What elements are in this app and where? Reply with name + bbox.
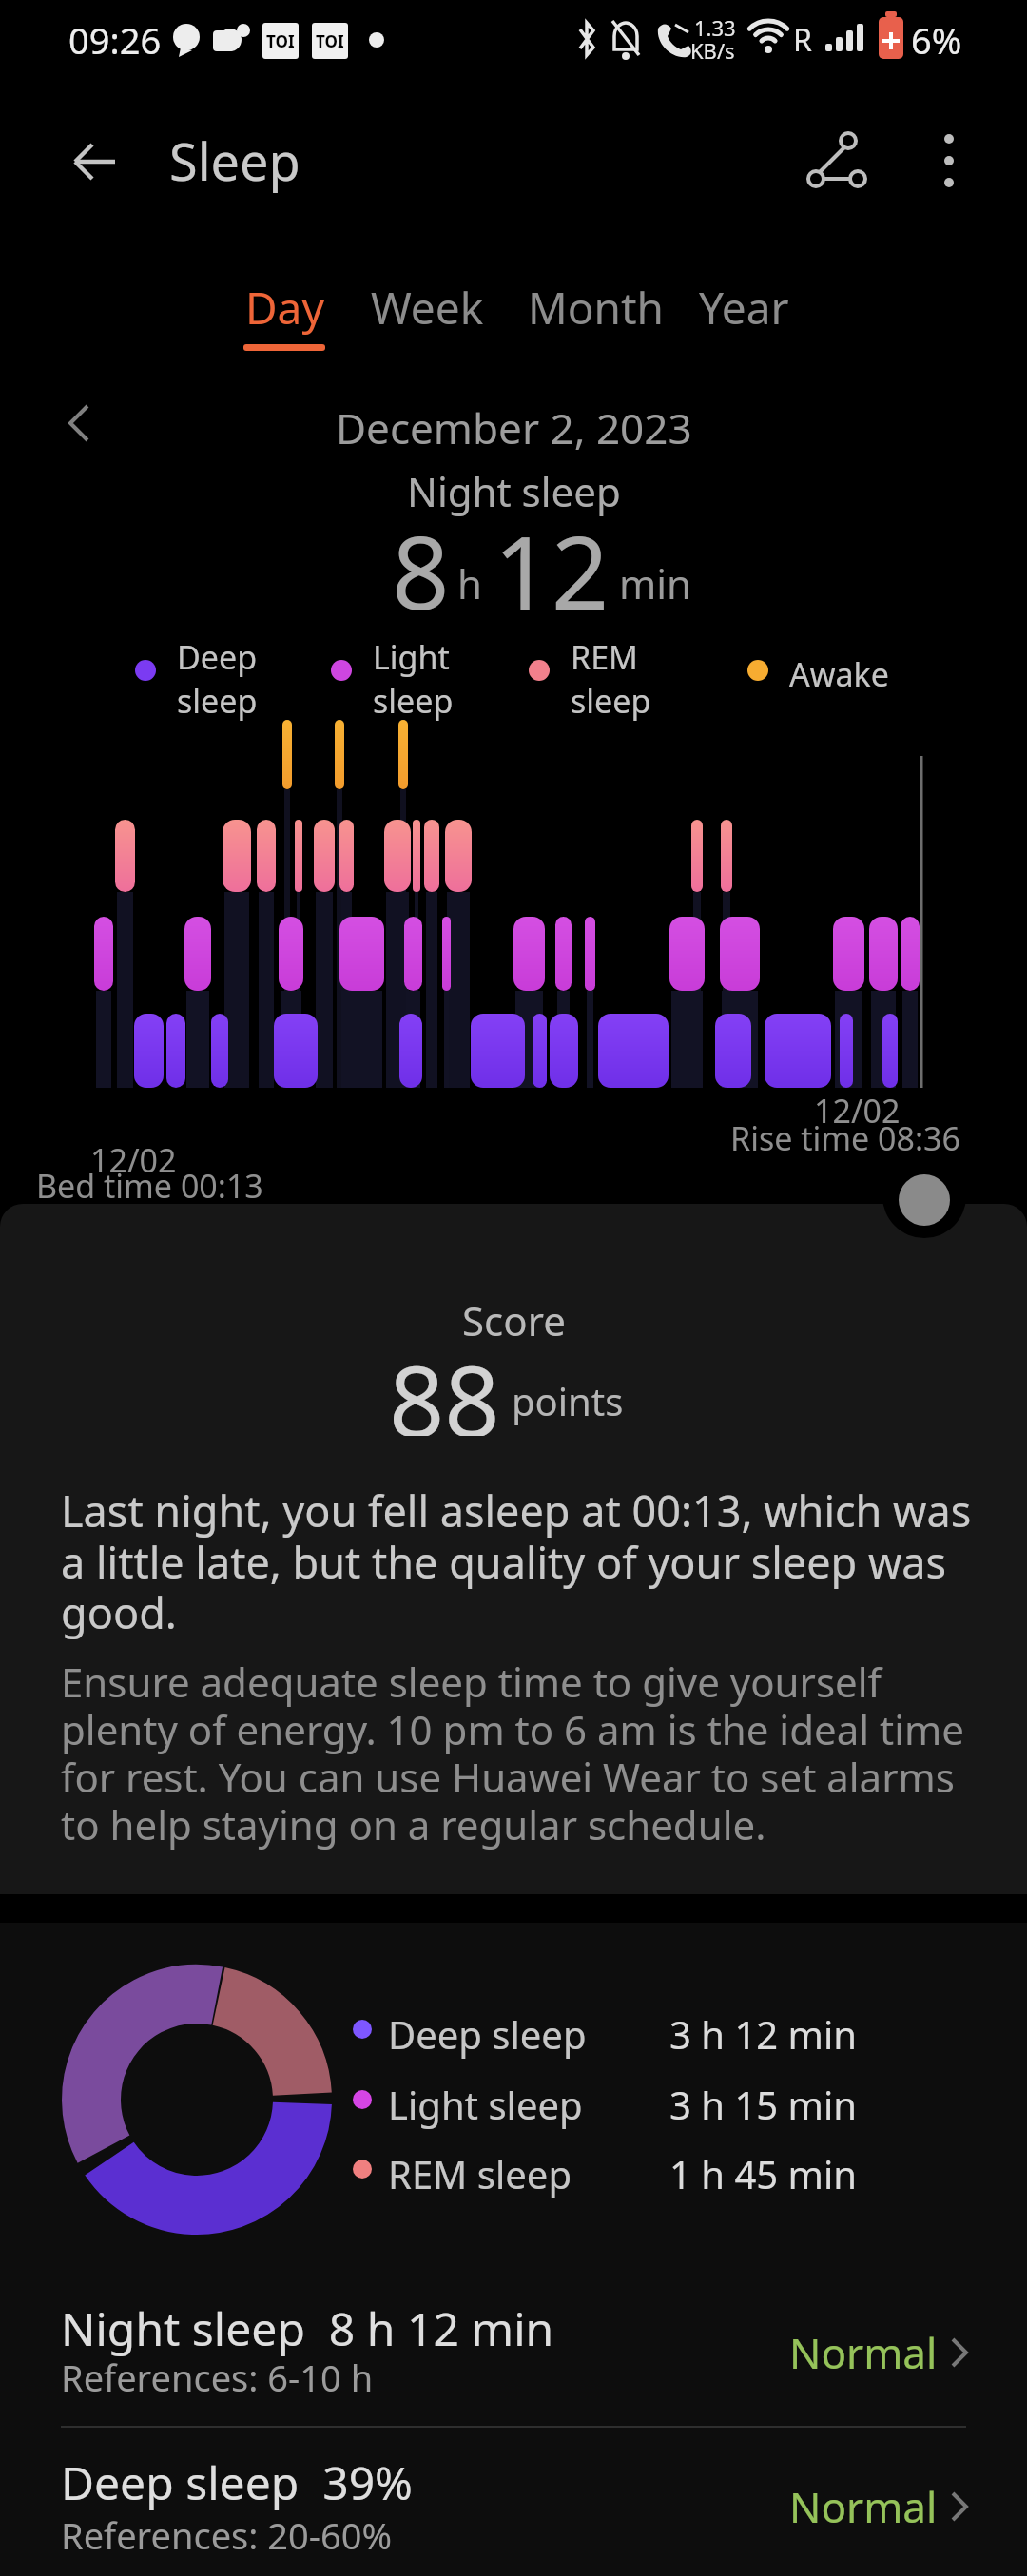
staticText: Rise time 08:36: [730, 1116, 960, 1160]
button[interactable]: [908, 119, 989, 204]
staticText: References: 20-60%: [61, 2510, 393, 2560]
staticText: Awake: [789, 652, 889, 696]
button[interactable]: Night sleep 8 h 12 min: [0, 2282, 1027, 2422]
staticText: Bed time 00:13: [36, 1164, 263, 1208]
staticText: Night sleep 8 h 12 min: [61, 2297, 554, 2359]
staticText: 12/02: [90, 1138, 177, 1182]
staticText: Score: [462, 1293, 566, 1347]
staticText: 09:26: [68, 15, 162, 65]
staticText: points: [512, 1375, 624, 1426]
staticText: KB/s: [690, 36, 735, 65]
button[interactable]: [67, 404, 91, 442]
button[interactable]: [57, 128, 133, 195]
staticText: h: [457, 556, 482, 610]
button[interactable]: Deep sleep 39%: [0, 2436, 1027, 2576]
staticText: 8: [392, 502, 450, 622]
staticText: TOI: [266, 30, 295, 52]
staticText: REM sleep: [388, 2148, 572, 2199]
staticText: Normal: [789, 2324, 938, 2381]
button[interactable]: Month: [528, 278, 665, 338]
staticText: 12: [494, 502, 610, 622]
staticText: Sleep: [169, 126, 300, 196]
staticText: Deep sleep 39%: [61, 2451, 413, 2513]
button[interactable]: Week: [371, 278, 484, 338]
staticText: 3 h 15 min: [669, 2079, 857, 2130]
staticText: Deep sleep: [388, 2008, 587, 2060]
staticText: sleep: [571, 679, 651, 723]
staticText: REM: [571, 635, 638, 679]
staticText: sleep: [177, 679, 258, 723]
staticText: R: [793, 19, 812, 61]
button[interactable]: Day: [245, 278, 324, 338]
staticText: min: [619, 556, 692, 610]
staticText: 1.33: [694, 13, 736, 42]
staticText: Deep: [177, 635, 258, 679]
staticText: Last night, you fell asleep at 00:13, wh…: [61, 1482, 1002, 1641]
staticText: 6%: [911, 15, 962, 65]
staticText: December 2, 2023: [336, 399, 692, 456]
staticText: Light: [373, 635, 450, 679]
staticText: 1 h 45 min: [669, 2148, 857, 2199]
staticText: 3 h 12 min: [669, 2008, 857, 2060]
staticText: Night sleep: [407, 464, 621, 518]
staticText: Light sleep: [388, 2079, 583, 2130]
staticText: Normal: [789, 2478, 938, 2535]
button[interactable]: Year: [699, 278, 789, 338]
staticText: 88: [389, 1333, 500, 1436]
staticText: References: 6-10 h: [61, 2353, 374, 2402]
staticText: TOI: [316, 30, 344, 52]
staticText: sleep: [373, 679, 454, 723]
staticText: Ensure adequate sleep time to give yours…: [61, 1655, 1002, 1852]
button[interactable]: [789, 119, 884, 204]
staticText: 12/02: [814, 1089, 901, 1133]
